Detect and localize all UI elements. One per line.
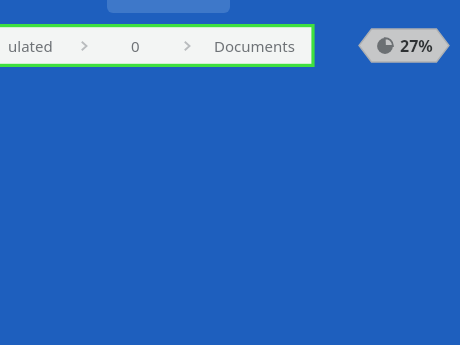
staticText: Documents: [214, 36, 295, 56]
staticText: 27%: [400, 35, 433, 57]
staticText: 0: [131, 36, 140, 56]
button[interactable]: ulated: [0, 24, 313, 67]
staticText: ulated: [8, 36, 53, 56]
button[interactable]: Storage 27 percent used: [359, 29, 449, 62]
